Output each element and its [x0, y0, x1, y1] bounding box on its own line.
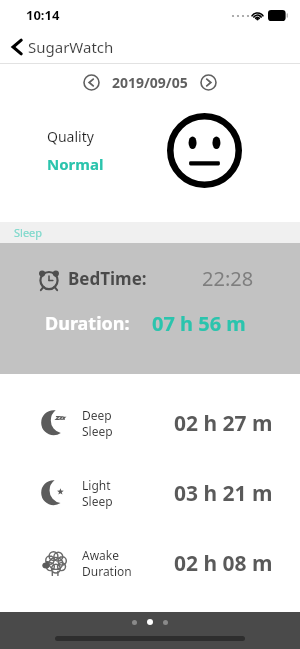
button[interactable]: SugarWatch: [0, 30, 300, 63]
staticText: Duration:: [45, 311, 130, 336]
button[interactable]: Previous day: [83, 74, 100, 91]
staticText: 07 h 56 m: [152, 310, 246, 337]
staticText: Sleep: [82, 423, 113, 439]
staticText: 02 h 08 m: [174, 549, 300, 578]
staticText: Awake: [82, 547, 120, 563]
button[interactable]: Deep: [0, 402, 300, 444]
staticText: 03 h 21 m: [174, 479, 300, 508]
staticText: Sleep: [82, 493, 113, 509]
staticText: Normal: [47, 154, 104, 174]
button[interactable]: Light: [0, 472, 300, 514]
staticText: 10:14: [26, 6, 60, 24]
staticText: Duration: [82, 563, 132, 579]
button[interactable]: Awake: [0, 542, 300, 584]
staticText: 22:28: [202, 265, 254, 292]
staticText: 2019/09/05: [112, 73, 188, 92]
staticText: Deep: [82, 407, 112, 423]
staticText: Quality: [47, 127, 94, 146]
staticText: SugarWatch: [28, 37, 114, 57]
staticText: Light: [82, 477, 111, 493]
staticText: 02 h 27 m: [174, 409, 300, 438]
staticText: BedTime:: [68, 267, 147, 290]
staticText: Sleep: [14, 225, 43, 240]
button[interactable]: Next day: [200, 74, 217, 91]
other: Neutral sleep quality face: [166, 112, 243, 189]
